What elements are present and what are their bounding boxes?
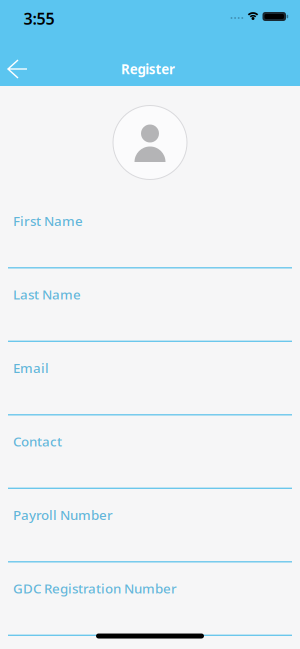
staticText: GDC Registration Number (13, 579, 177, 597)
button[interactable]: GDC Registration Number (0, 574, 300, 636)
button[interactable]: Email (0, 354, 300, 416)
button[interactable]: Last Name (0, 280, 300, 342)
staticText: 3:55 (23, 8, 54, 29)
button[interactable]: Contact (0, 427, 300, 489)
button[interactable]: Add profile photo (113, 105, 187, 179)
staticText: Payroll Number (13, 506, 113, 524)
staticText: Last Name (13, 285, 81, 303)
button[interactable]: First Name (0, 207, 300, 269)
button[interactable]: Payroll Number (0, 501, 300, 563)
staticText: Register (121, 60, 175, 78)
button[interactable]: Back (1, 51, 35, 85)
staticText: Email (13, 359, 49, 377)
staticText: First Name (13, 212, 83, 230)
staticText: Contact (13, 432, 62, 450)
